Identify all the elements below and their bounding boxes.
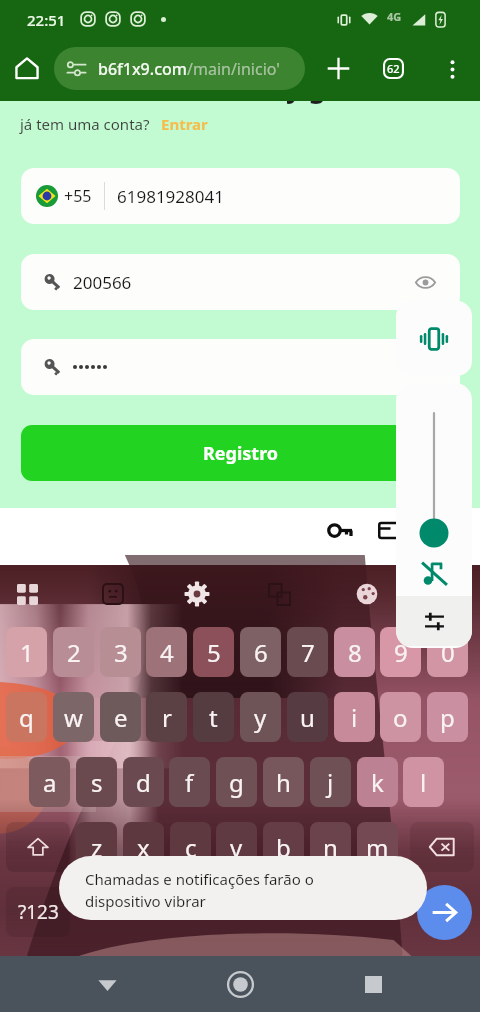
button[interactable]: Translate — [254, 569, 304, 619]
button[interactable]: b6f1x9.com — [54, 47, 305, 90]
button[interactable]: Apps — [2, 569, 52, 619]
button[interactable]: o — [380, 692, 421, 742]
button[interactable]: 5 — [193, 627, 234, 677]
button[interactable]: 1 — [6, 627, 47, 677]
staticText: c — [185, 831, 197, 864]
button[interactable]: New tab — [316, 46, 360, 90]
staticText: 9 — [394, 636, 408, 669]
button[interactable]: l — [403, 757, 444, 807]
button[interactable]: Open sound settings — [396, 596, 472, 646]
button[interactable]: 4 — [146, 627, 187, 677]
button[interactable]: Switch tabs — [371, 46, 415, 90]
staticText: 61981928041 — [117, 185, 224, 208]
button[interactable]: Mute media — [396, 551, 472, 596]
staticText: i — [351, 701, 358, 734]
button[interactable]: ?123 — [6, 887, 70, 937]
button[interactable]: j — [310, 757, 351, 807]
button[interactable]: t — [193, 692, 234, 742]
staticText: 62 — [387, 61, 400, 76]
button[interactable]: Keyboard settings — [172, 569, 222, 619]
button[interactable]: 6 — [240, 627, 281, 677]
staticText: s — [91, 766, 103, 799]
button[interactable]: 9 — [380, 627, 421, 677]
staticText: y g — [286, 69, 326, 106]
button[interactable]: u — [287, 692, 328, 742]
staticText: Registro — [203, 441, 279, 466]
button[interactable]: v — [216, 822, 257, 872]
button[interactable]: q — [6, 692, 47, 742]
staticText: 22:51 — [27, 10, 66, 30]
button[interactable]: 200566 — [21, 254, 460, 310]
button[interactable]: More options — [432, 49, 472, 89]
button[interactable]: Back — [81, 958, 133, 1010]
staticText: b6f1x9.com — [98, 58, 187, 80]
button[interactable]: a — [29, 757, 70, 807]
button[interactable]: i — [334, 692, 375, 742]
staticText: +55 — [64, 185, 92, 207]
button[interactable]: Recent apps — [347, 958, 399, 1010]
button[interactable]: m — [357, 822, 398, 872]
button[interactable]: x — [123, 822, 164, 872]
button[interactable]: 0 — [427, 627, 468, 677]
button[interactable]: Home — [5, 46, 49, 90]
button[interactable]: e — [100, 692, 141, 742]
button[interactable]: s — [76, 757, 117, 807]
button[interactable] — [21, 339, 460, 395]
button[interactable]: 3 — [100, 627, 141, 677]
staticText: r — [162, 701, 172, 734]
button[interactable]: 8 — [334, 627, 375, 677]
staticText: k — [371, 766, 384, 799]
staticText: t — [209, 701, 218, 734]
button[interactable]: 2 — [53, 627, 94, 677]
button[interactable]: Themes — [342, 569, 392, 619]
staticText: a — [43, 766, 57, 799]
button[interactable]: Enter — [417, 885, 472, 940]
staticText: n — [323, 831, 338, 864]
staticText: e — [114, 701, 128, 734]
staticText: ?123 — [18, 899, 59, 925]
staticText: 8 — [348, 636, 362, 669]
staticText: w — [64, 701, 83, 734]
staticText: o — [393, 701, 408, 734]
button[interactable]: g — [216, 757, 257, 807]
staticText: 0 — [441, 636, 455, 669]
staticText: d — [136, 766, 151, 799]
button[interactable]: Shift — [6, 822, 70, 872]
staticText: dispositivo vibrar — [85, 891, 206, 911]
button[interactable]: Backspace — [410, 822, 474, 872]
button[interactable]: r — [146, 692, 187, 742]
button[interactable]: Payment methods — [368, 508, 412, 552]
button[interactable]: c — [170, 822, 211, 872]
button[interactable]: y — [240, 692, 281, 742]
button[interactable]: Home — [214, 958, 266, 1010]
button[interactable]: 7 — [287, 627, 328, 677]
button[interactable]: Passwords — [318, 508, 362, 552]
staticText: h — [276, 766, 291, 799]
staticText: 4G — [387, 9, 402, 24]
staticText: 4 — [160, 636, 174, 669]
staticText: q — [19, 701, 34, 734]
button[interactable]: Show password — [410, 267, 440, 297]
button[interactable]: d — [123, 757, 164, 807]
button[interactable]: Ringer mode: vibrate — [396, 301, 472, 376]
button[interactable]: z — [76, 822, 117, 872]
staticText: Chamadas e notificações farão o — [85, 869, 314, 889]
button[interactable]: Media volume — [396, 383, 472, 551]
staticText: b — [276, 831, 291, 864]
button[interactable]: +55 — [21, 168, 460, 224]
button[interactable]: w — [53, 692, 94, 742]
staticText: j — [327, 766, 334, 799]
staticText: 6 — [254, 636, 268, 669]
staticText: g — [229, 766, 244, 799]
button[interactable]: k — [357, 757, 398, 807]
button[interactable]: Entrar — [161, 114, 208, 134]
button[interactable]: p — [427, 692, 468, 742]
button[interactable]: n — [310, 822, 351, 872]
button[interactable]: b — [263, 822, 304, 872]
button[interactable]: Stickers — [88, 569, 138, 619]
staticText: /main/inicio' — [187, 58, 280, 80]
button[interactable]: h — [263, 757, 304, 807]
button[interactable]: f — [169, 757, 210, 807]
button[interactable]: Registro — [21, 425, 460, 481]
staticText: 2 — [67, 636, 81, 669]
